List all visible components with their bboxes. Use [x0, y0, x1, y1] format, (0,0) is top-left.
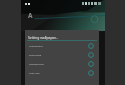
- staticText: Transparent: [29, 44, 43, 47]
- staticText: Kaleidoscope: [29, 62, 44, 65]
- button[interactable]: Transparent: [25, 41, 99, 50]
- staticText: Gray Wall: [29, 71, 40, 74]
- staticText: A: [28, 11, 33, 20]
- staticText: Embossing: [29, 53, 42, 56]
- button[interactable]: Kaleidoscope: [25, 59, 99, 68]
- staticText: Setting wallpaper...: [28, 35, 59, 40]
- button[interactable]: Gray Wall: [25, 68, 99, 77]
- button[interactable]: Embossing: [25, 50, 99, 59]
